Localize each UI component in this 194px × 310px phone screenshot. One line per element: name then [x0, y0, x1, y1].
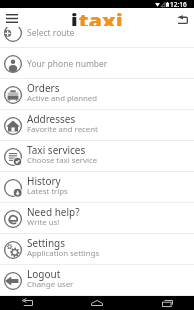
- staticText: taxi: [78, 7, 123, 26]
- staticText: Addresses: [27, 112, 76, 126]
- staticText: Need help?: [27, 205, 80, 219]
- button[interactable]: History: [0, 172, 194, 203]
- staticText: Logout: [27, 267, 61, 281]
- button[interactable]: Orders: [0, 79, 194, 110]
- button[interactable]: Home: [74, 296, 120, 310]
- staticText: Change user: [27, 279, 74, 290]
- button[interactable]: Recent apps: [144, 296, 190, 310]
- button[interactable]: Settings: [0, 234, 194, 265]
- staticText: i: [71, 7, 78, 26]
- staticText: Select route: [27, 27, 75, 39]
- staticText: Favorite and recent: [27, 124, 98, 135]
- staticText: Your phone number: [27, 58, 108, 70]
- staticText: Orders: [27, 81, 60, 95]
- staticText: Settings: [27, 236, 66, 250]
- staticText: Active and planned: [27, 93, 97, 104]
- button[interactable]: Addresses: [0, 110, 194, 141]
- button[interactable]: Your phone number: [0, 48, 194, 79]
- button[interactable]: Open navigation menu: [0, 8, 24, 27]
- staticText: History: [27, 174, 61, 188]
- staticText: Application settings: [27, 248, 100, 259]
- staticText: 12:16: [170, 0, 187, 8]
- button[interactable]: Need help?: [0, 203, 194, 234]
- button[interactable]: Undo: [172, 8, 194, 27]
- staticText: Taxi services: [27, 143, 86, 157]
- button[interactable]: Select route: [0, 27, 194, 48]
- button[interactable]: Taxi services: [0, 141, 194, 172]
- button[interactable]: Back: [4, 296, 50, 310]
- staticText: Latest trips: [27, 186, 68, 197]
- staticText: Write us!: [27, 217, 60, 228]
- staticText: Choose taxi service: [27, 155, 98, 166]
- button[interactable]: Logout: [0, 265, 194, 296]
